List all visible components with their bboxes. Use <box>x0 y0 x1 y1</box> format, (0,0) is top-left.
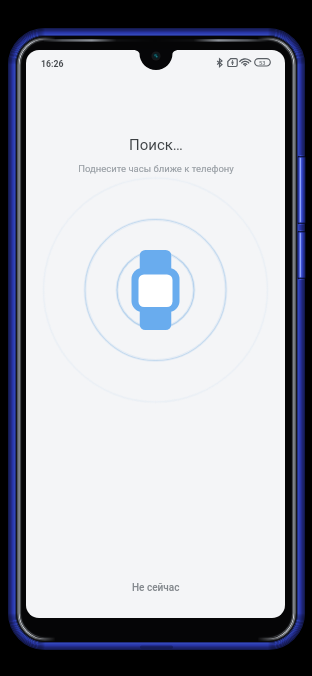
staticText: Поднесите часы ближе к телефону <box>78 163 234 174</box>
staticText: Не сейчас <box>132 582 180 594</box>
staticText: 53 <box>259 60 266 67</box>
staticText: Поиск… <box>129 136 183 154</box>
button[interactable]: Не сейчас <box>118 576 194 600</box>
staticText: 16:26 <box>41 59 64 69</box>
